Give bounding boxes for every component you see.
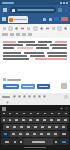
button[interactable]: Key 1 [1,117,7,123]
button[interactable]: Key 5 [27,117,34,123]
button[interactable]: Key 3 [24,131,31,137]
button[interactable]: Key 2 [7,111,13,116]
button[interactable]: Save [21,84,35,89]
button[interactable]: Shift [1,131,10,137]
button[interactable]: Tool 6 [33,26,38,31]
button[interactable]: Send [3,84,19,89]
button[interactable]: Emoji [12,138,18,145]
button[interactable]: Key 4 [31,131,38,137]
button[interactable]: Key 10 [62,117,69,123]
button[interactable]: Tool 11 [63,26,68,31]
button[interactable]: Search [65,107,68,110]
button[interactable]: Key 7 [41,111,48,116]
button[interactable]: Symbols [1,138,12,145]
button[interactable]: Keyboard tool 6 [38,95,41,98]
button[interactable]: Key 1 [3,124,11,130]
button[interactable]: Tool 8 [45,26,50,31]
button[interactable]: Tool 9 [51,26,56,31]
button[interactable]: Space [24,138,53,145]
button[interactable]: Key 3 [13,117,20,123]
button[interactable]: Key 9 [55,111,62,116]
button[interactable]: More options [64,8,68,12]
button[interactable]: Keyboard tool 3 [23,95,26,98]
button[interactable]: Tool 7 [39,26,44,31]
button[interactable]: Key 7 [41,117,48,123]
button[interactable]: Home [2,7,8,13]
button[interactable]: Enter [59,138,69,145]
button[interactable] [8,16,28,23]
button[interactable]: Key 8 [48,117,55,123]
button[interactable]: Collapse [64,95,68,99]
button[interactable]: Period [53,138,59,145]
button[interactable]: Key 7 [52,131,59,137]
button[interactable]: Clipboard [2,96,10,98]
button[interactable]: Key 8 [48,111,55,116]
button[interactable]: Key 1 [1,111,7,116]
button[interactable]: Key 4 [20,111,27,116]
button[interactable]: Alerts [61,17,68,21]
button[interactable]: Backspace [59,131,69,137]
button[interactable]: Preview [37,84,50,89]
button[interactable]: Keyboard tool 2 [18,95,21,98]
button[interactable]: Key 6 [45,131,52,137]
button[interactable]: Key 6 [34,117,41,123]
button[interactable]: Clipboard [2,107,6,111]
button[interactable] [10,7,56,13]
button[interactable]: Key 4 [20,117,27,123]
button[interactable]: Key 4 [25,124,32,130]
button[interactable]: Key 2 [11,124,18,130]
button[interactable]: Keyboard tool 5 [33,95,36,98]
button[interactable]: Key 5 [27,111,34,116]
button[interactable]: Key 7 [46,124,53,130]
button[interactable]: Key 3 [18,124,25,130]
button[interactable]: History [48,17,52,21]
button[interactable]: Key 5 [32,124,39,130]
button[interactable]: Key 8 [53,124,60,130]
button[interactable]: Key 3 [13,111,20,116]
button[interactable]: Keyboard tool 4 [28,95,31,98]
button[interactable]: Tabs [58,8,62,12]
button[interactable]: Key 2 [7,117,13,123]
button[interactable]: Keyboard tool 7 [43,95,46,98]
button[interactable]: Tool 1 [2,26,7,31]
button[interactable]: Tool 3 [14,26,19,31]
button[interactable]: Keyboard tool 1 [13,95,16,98]
button[interactable]: Tool 10 [57,26,62,31]
button[interactable]: Key 1 [10,131,17,137]
button[interactable]: Tool 2 [8,26,13,31]
button[interactable]: Bookmark [42,17,46,21]
button[interactable]: Tool 4 [20,26,25,31]
button[interactable]: Comma [18,138,24,145]
button[interactable]: Key 9 [60,124,67,130]
button[interactable]: Key 5 [38,131,45,137]
button[interactable]: Settings [60,107,63,110]
button[interactable]: Voice input [6,101,9,104]
button[interactable]: Key 2 [17,131,24,137]
button[interactable]: Apps [2,17,6,21]
button[interactable]: Key 10 [62,111,69,116]
button[interactable]: Key 6 [34,111,41,116]
button[interactable]: Tool 5 [26,26,31,31]
button[interactable]: Key 9 [55,117,62,123]
button[interactable]: Delete [61,83,67,89]
button[interactable]: Key 6 [39,124,46,130]
